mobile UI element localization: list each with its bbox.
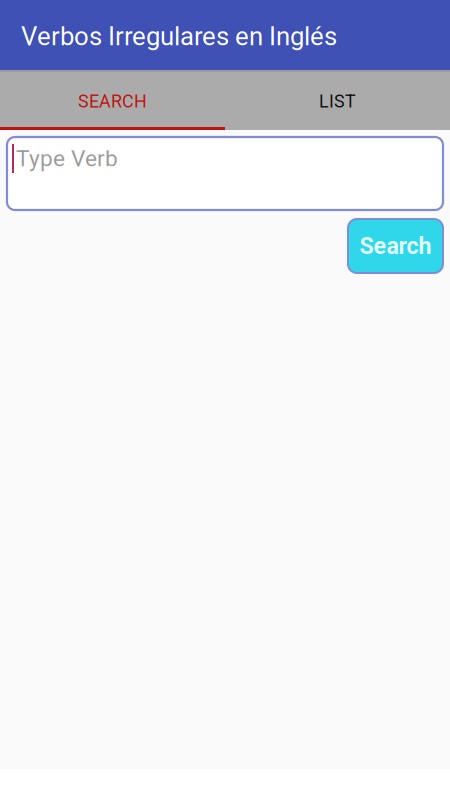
staticText: SEARCH (78, 91, 147, 112)
button[interactable]: SEARCH (0, 70, 225, 130)
staticText: Search (359, 232, 431, 260)
button[interactable]: Type Verb (7, 137, 443, 210)
button[interactable]: LIST (225, 70, 450, 130)
staticText: LIST (319, 91, 356, 112)
button[interactable]: Search (348, 219, 443, 273)
staticText: Verbos Irregulares en Inglés (21, 21, 337, 52)
staticText: Type Verb (16, 145, 118, 172)
